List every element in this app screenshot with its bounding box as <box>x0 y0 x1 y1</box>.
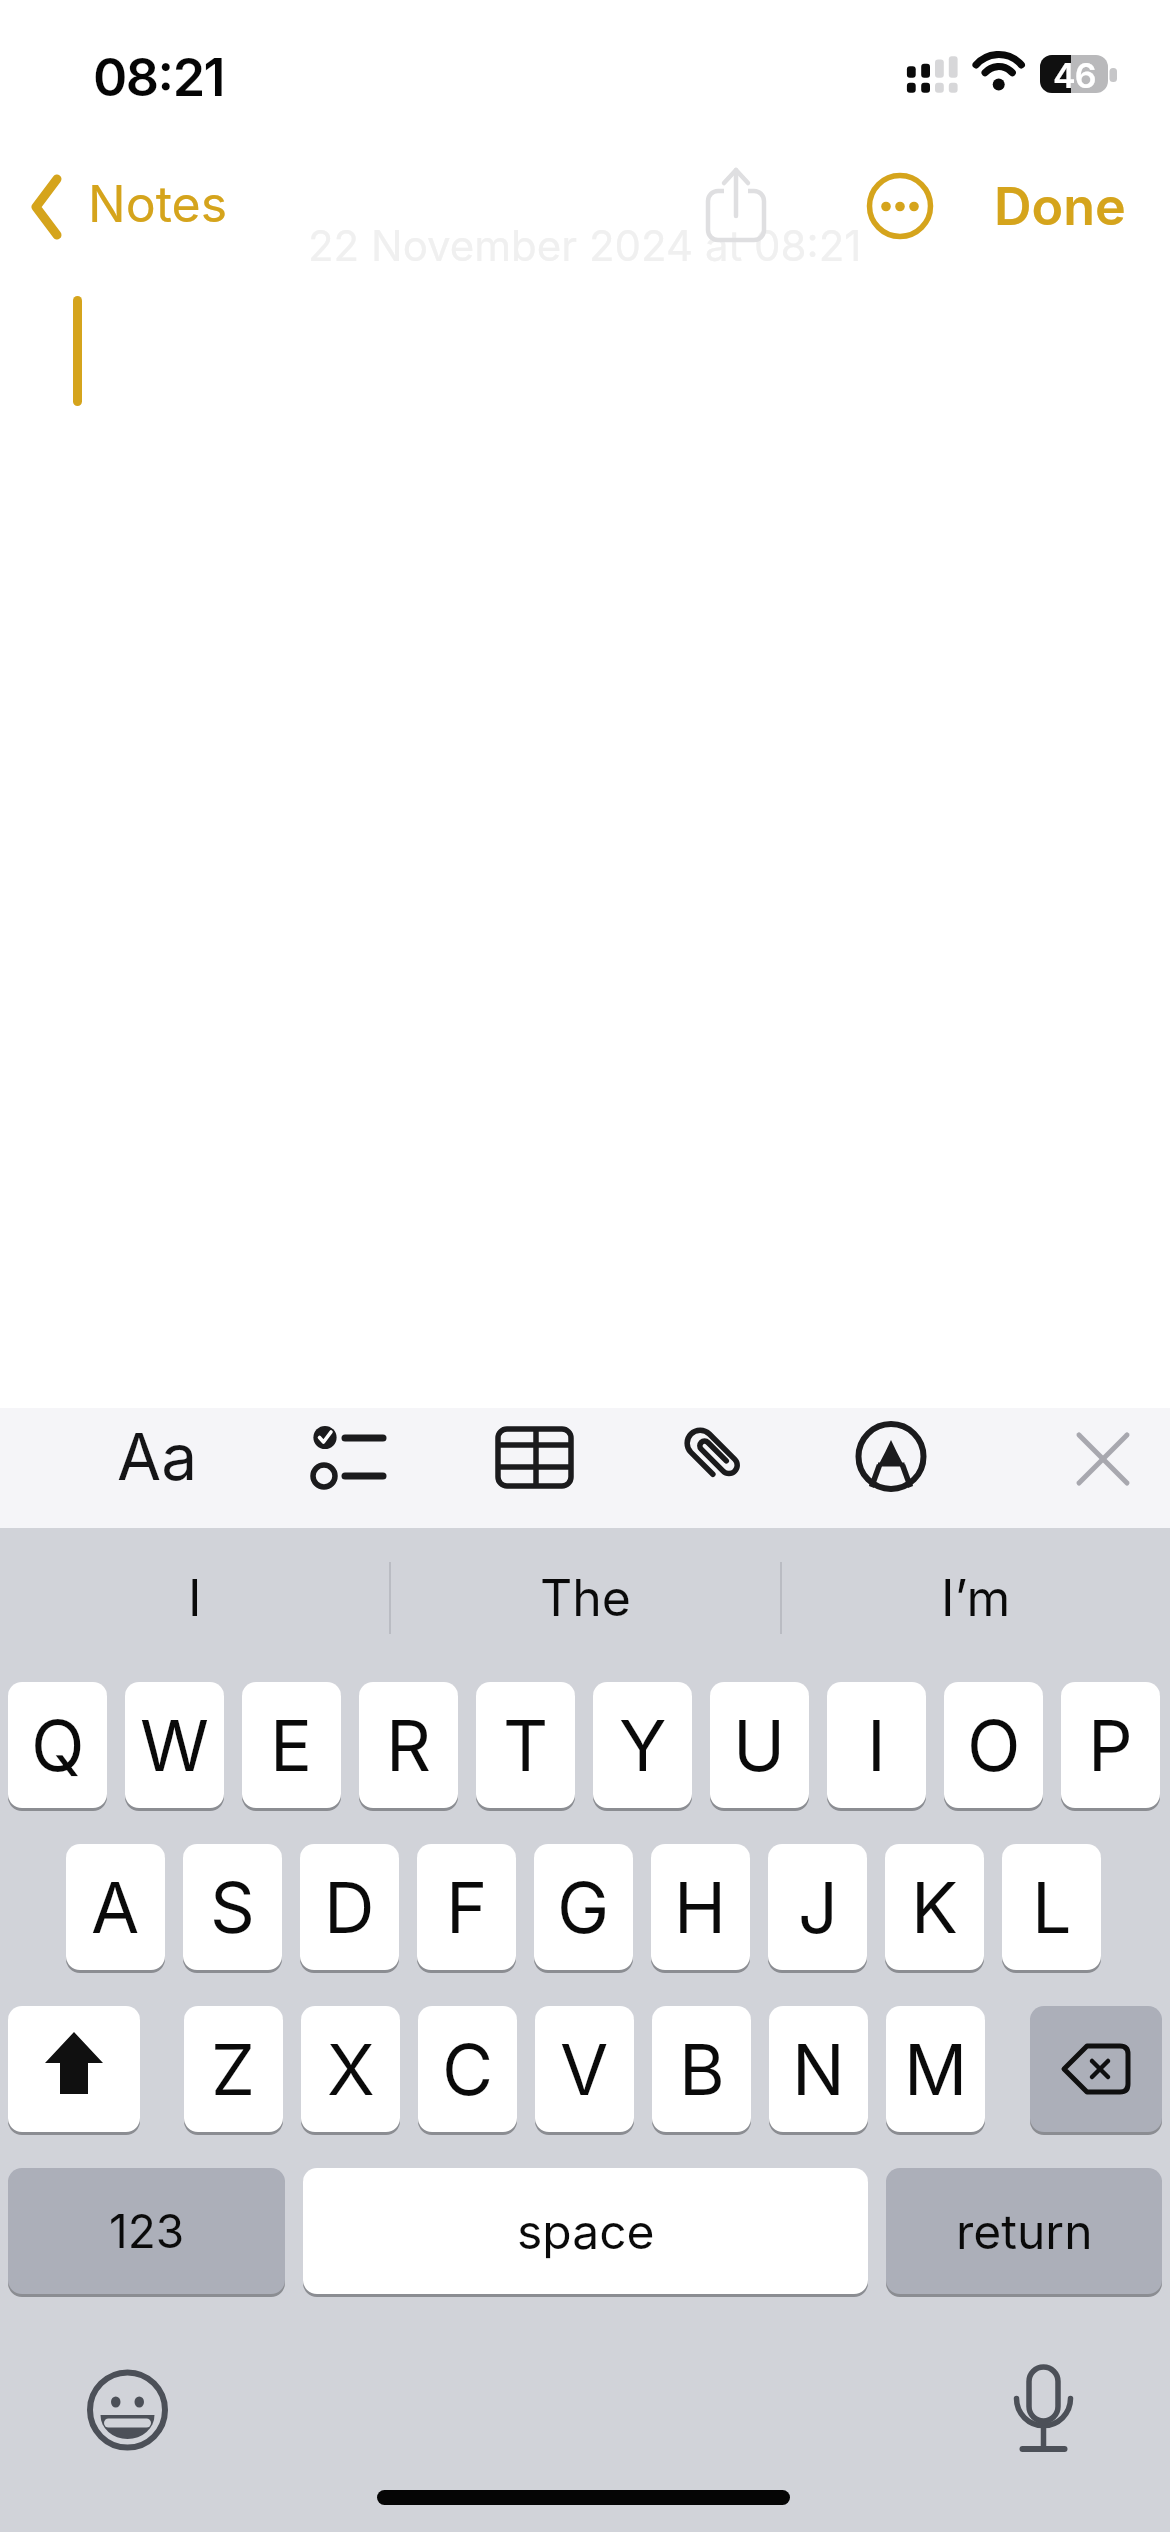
button[interactable]: I’m <box>781 1556 1170 1640</box>
button[interactable] <box>1030 2006 1162 2132</box>
button[interactable]: Z <box>184 2006 283 2132</box>
button[interactable]: The <box>390 1556 780 1640</box>
staticText: C <box>442 2027 494 2112</box>
button[interactable] <box>486 1408 586 1528</box>
staticText: M <box>904 2027 968 2112</box>
button[interactable]: E <box>242 1682 341 1808</box>
button[interactable]: 123 <box>8 2168 285 2294</box>
button[interactable] <box>866 172 934 240</box>
button[interactable]: G <box>534 1844 633 1970</box>
button[interactable]: Q <box>8 1682 107 1808</box>
staticText: I’m <box>941 1568 1011 1628</box>
button[interactable]: C <box>418 2006 517 2132</box>
staticText: X <box>327 2027 375 2112</box>
button[interactable]: Notes <box>20 165 240 245</box>
button[interactable]: L <box>1002 1844 1101 1970</box>
staticText: B <box>679 2027 725 2112</box>
staticText: The <box>540 1568 631 1628</box>
button[interactable]: R <box>359 1682 458 1808</box>
button[interactable]: M <box>886 2006 985 2132</box>
button[interactable]: space <box>303 2168 868 2294</box>
button[interactable]: return <box>886 2168 1162 2294</box>
button[interactable] <box>64 2346 192 2474</box>
staticText: E <box>270 1703 313 1788</box>
staticText: Notes <box>88 174 228 234</box>
button[interactable] <box>8 2006 140 2132</box>
staticText: A <box>91 1865 140 1950</box>
staticText: O <box>967 1703 1021 1788</box>
staticText: V <box>560 2027 609 2112</box>
staticText: 22 November 2024 at 08:21 <box>308 220 862 271</box>
staticText: 46 <box>1053 55 1096 93</box>
button[interactable]: I <box>0 1556 389 1640</box>
button[interactable]: F <box>417 1844 516 1970</box>
button[interactable]: T <box>476 1682 575 1808</box>
staticText: D <box>324 1865 375 1950</box>
button[interactable]: J <box>768 1844 867 1970</box>
button[interactable]: H <box>651 1844 750 1970</box>
staticText: F <box>446 1865 488 1950</box>
button[interactable]: K <box>885 1844 984 1970</box>
staticText: H <box>674 1865 727 1950</box>
button[interactable] <box>848 1408 936 1528</box>
button[interactable]: W <box>125 1682 224 1808</box>
button[interactable]: S <box>183 1844 282 1970</box>
staticText: return <box>956 2202 1093 2260</box>
staticText: T <box>503 1703 549 1788</box>
button[interactable] <box>1064 1408 1154 1528</box>
staticText: S <box>210 1865 255 1950</box>
staticText: U <box>733 1703 786 1788</box>
button[interactable]: B <box>652 2006 751 2132</box>
staticText: P <box>1088 1703 1133 1788</box>
staticText: I <box>867 1703 886 1788</box>
staticText: Z <box>211 2027 256 2112</box>
button[interactable]: A <box>66 1844 165 1970</box>
button[interactable]: D <box>300 1844 399 1970</box>
staticText: Done <box>994 175 1126 238</box>
staticText: G <box>557 1865 610 1950</box>
staticText: 08:21 <box>93 46 225 109</box>
staticText: W <box>140 1703 209 1788</box>
staticText: K <box>911 1865 959 1950</box>
staticText: Q <box>31 1703 85 1788</box>
staticText: Y <box>619 1703 667 1788</box>
staticText: J <box>798 1865 838 1950</box>
staticText: Aa <box>117 1418 198 1495</box>
staticText: L <box>1032 1865 1072 1950</box>
button[interactable] <box>674 1408 758 1528</box>
button[interactable]: N <box>769 2006 868 2132</box>
button[interactable]: Y <box>593 1682 692 1808</box>
staticText: N <box>792 2027 845 2112</box>
button[interactable]: Aa <box>100 1408 220 1528</box>
button[interactable]: U <box>710 1682 809 1808</box>
button[interactable]: V <box>535 2006 634 2132</box>
staticText: R <box>386 1703 432 1788</box>
button[interactable]: O <box>944 1682 1043 1808</box>
button[interactable] <box>698 160 778 252</box>
staticText: I <box>188 1568 202 1628</box>
button[interactable]: I <box>827 1682 926 1808</box>
button[interactable]: X <box>301 2006 400 2132</box>
staticText: space <box>517 2202 655 2260</box>
button[interactable]: Done <box>985 168 1135 244</box>
button[interactable] <box>290 1408 406 1528</box>
button[interactable] <box>988 2340 1100 2468</box>
staticText: 123 <box>109 2203 185 2259</box>
button[interactable]: P <box>1061 1682 1160 1808</box>
